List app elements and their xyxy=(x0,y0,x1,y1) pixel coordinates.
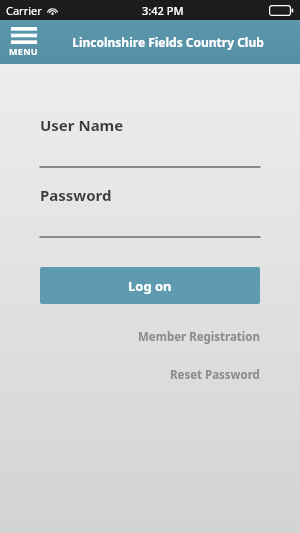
button[interactable]: Member Registration xyxy=(40,325,260,349)
staticText: Carrier xyxy=(6,3,42,18)
staticText: Member Registration xyxy=(138,329,260,345)
button[interactable]: Log on xyxy=(40,267,260,304)
staticText: 3:42 PM xyxy=(142,3,184,18)
staticText: MENU xyxy=(9,45,38,57)
button[interactable]: Menu xyxy=(7,25,40,59)
staticText: Log on xyxy=(128,277,172,295)
staticText: Password xyxy=(40,185,112,205)
staticText: User Name xyxy=(40,115,124,135)
button[interactable]: Reset Password xyxy=(40,363,260,387)
staticText: Reset Password xyxy=(170,367,260,383)
staticText: Lincolnshire Fields Country Club xyxy=(72,34,264,50)
